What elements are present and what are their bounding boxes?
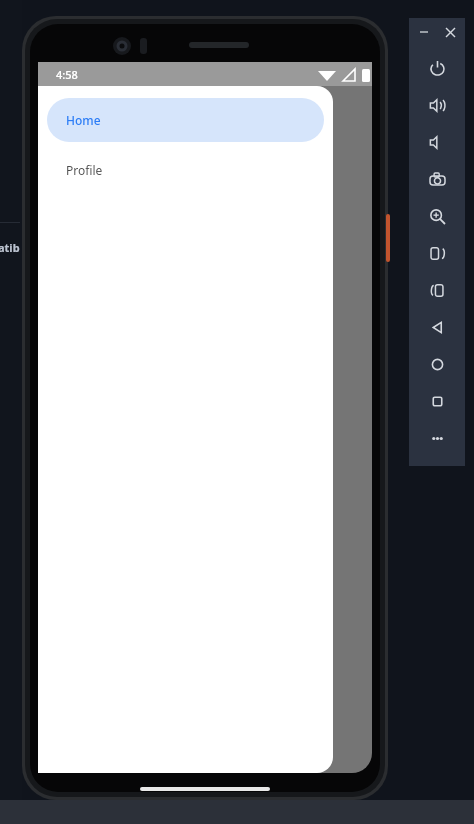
button[interactable]: Take screenshot — [409, 161, 465, 198]
button[interactable]: Back — [409, 309, 465, 346]
button[interactable]: Zoom — [409, 198, 465, 235]
button[interactable]: Volume down — [409, 124, 465, 161]
button[interactable]: Home — [409, 346, 465, 383]
button[interactable]: Home — [47, 98, 324, 142]
button[interactable]: Power — [409, 50, 465, 87]
staticText: atib — [0, 240, 20, 255]
button[interactable]: More — [409, 420, 465, 457]
button[interactable]: Volume up — [409, 87, 465, 124]
staticText: Profile — [66, 162, 103, 178]
button[interactable]: Close — [440, 22, 460, 42]
button[interactable]: Rotate right — [409, 272, 465, 309]
button[interactable]: Overview — [409, 383, 465, 420]
button[interactable]: Minimize — [414, 22, 434, 42]
staticText: 4:58 — [56, 67, 78, 82]
button[interactable]: Rotate left — [409, 235, 465, 272]
staticText: Home — [66, 112, 101, 128]
button[interactable]: Profile — [47, 148, 324, 192]
